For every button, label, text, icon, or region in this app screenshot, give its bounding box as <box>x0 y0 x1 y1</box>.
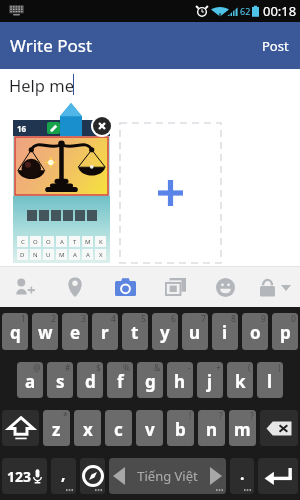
button[interactable]: Space <box>109 458 226 494</box>
staticText: 00:18 <box>263 2 297 20</box>
staticText: . <box>240 463 245 485</box>
button[interactable]: Remove photo <box>93 117 111 135</box>
button[interactable]: o <box>242 313 268 350</box>
button[interactable]: Privacy <box>250 267 300 307</box>
staticText: 8 <box>231 313 236 325</box>
staticText: 9 <box>261 313 266 325</box>
button[interactable]: Sticker <box>200 267 250 307</box>
button[interactable]: Camera <box>100 267 150 307</box>
button[interactable]: h <box>167 362 193 398</box>
staticText: k <box>235 370 246 393</box>
staticText: A <box>73 251 77 259</box>
staticText: Post <box>262 37 289 55</box>
staticText: Help me <box>9 74 74 96</box>
button[interactable]: y <box>152 313 178 350</box>
staticText: N <box>33 251 38 259</box>
button[interactable]: Comma <box>51 458 76 494</box>
staticText: b <box>175 418 186 441</box>
button[interactable]: d <box>77 362 103 398</box>
staticText: n <box>206 418 218 441</box>
button[interactable]: Shift <box>2 410 39 446</box>
staticText: 0 <box>291 313 296 325</box>
staticText: 1 <box>21 313 26 325</box>
button[interactable]: Numbers and voice input <box>2 458 47 494</box>
staticText: 4 <box>111 313 116 325</box>
staticText: O <box>46 238 51 246</box>
staticText: c <box>114 418 123 441</box>
staticText: 2 <box>51 313 56 325</box>
button[interactable]: Enter <box>258 458 298 494</box>
staticText: M <box>85 238 91 246</box>
button[interactable]: p <box>272 313 298 350</box>
button[interactable]: a <box>17 362 43 398</box>
staticText: A <box>86 251 90 259</box>
button[interactable]: l <box>257 362 283 398</box>
button[interactable]: u <box>182 313 208 350</box>
staticText: ! <box>189 410 192 422</box>
staticText: M <box>59 251 65 259</box>
button[interactable]: z <box>43 410 70 446</box>
staticText: w <box>38 321 53 344</box>
staticText: p <box>280 321 291 344</box>
button[interactable]: q <box>2 313 28 350</box>
button[interactable]: Period <box>230 458 254 494</box>
staticText: t <box>131 321 139 344</box>
staticText: ) <box>278 362 281 374</box>
staticText: 5 <box>141 313 146 325</box>
button[interactable]: f <box>107 362 133 398</box>
button[interactable]: e <box>62 313 88 350</box>
staticText: $ <box>96 362 101 374</box>
button[interactable]: t <box>122 313 148 350</box>
staticText: - <box>188 362 191 374</box>
button[interactable]: Post <box>251 22 300 69</box>
staticText: f <box>117 370 124 393</box>
staticText: d <box>85 370 96 393</box>
staticText: A <box>60 238 64 246</box>
button[interactable]: j <box>197 362 223 398</box>
button[interactable]: i <box>212 313 238 350</box>
button[interactable]: Photos <box>150 267 200 307</box>
staticText: ? <box>250 410 254 422</box>
staticText: y <box>160 321 170 344</box>
staticText: a <box>25 370 36 393</box>
button[interactable]: s <box>47 362 73 398</box>
staticText: 62 <box>240 5 251 17</box>
staticText: x <box>83 418 93 441</box>
button[interactable]: r <box>92 313 118 350</box>
staticText: z <box>52 418 61 441</box>
staticText: K <box>99 238 103 246</box>
staticText: s <box>56 370 65 393</box>
button[interactable]: g <box>137 362 163 398</box>
staticText: 16 <box>17 123 27 134</box>
staticText: q <box>10 321 21 344</box>
staticText: O <box>33 238 38 246</box>
button[interactable]: w <box>32 313 58 350</box>
button[interactable]: Location <box>50 267 100 307</box>
button[interactable]: m <box>229 410 256 446</box>
staticText: j <box>207 370 213 393</box>
staticText: ? <box>219 410 223 422</box>
button[interactable]: c <box>105 410 132 446</box>
staticText: T <box>73 238 77 246</box>
staticText: , <box>61 463 66 485</box>
staticText: h <box>174 370 186 393</box>
staticText: r <box>101 321 109 344</box>
staticText: Tiếng Việt <box>137 467 198 485</box>
staticText: U <box>46 251 51 259</box>
button[interactable]: k <box>227 362 253 398</box>
button[interactable]: n <box>198 410 225 446</box>
staticText: e <box>70 321 81 344</box>
staticText: l <box>267 370 273 393</box>
button[interactable]: x <box>74 410 101 446</box>
button[interactable]: Change language <box>80 458 105 494</box>
button[interactable]: Backspace <box>260 410 298 446</box>
button[interactable]: b <box>167 410 194 446</box>
staticText: 6 <box>171 313 176 325</box>
staticText: C <box>21 238 25 246</box>
staticText: 7 <box>201 313 206 325</box>
button[interactable]: v <box>136 410 163 446</box>
button[interactable]: Tag people <box>0 267 50 307</box>
staticText: 3 <box>81 313 86 325</box>
button[interactable]: Add photo <box>120 123 221 263</box>
staticText: ( <box>248 362 251 374</box>
